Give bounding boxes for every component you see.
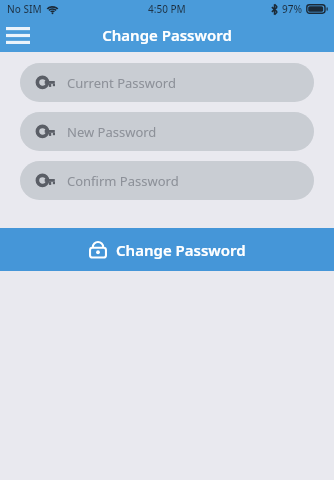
staticText: New Password [67,123,157,141]
button[interactable]: Current Password [20,63,314,102]
staticText: 4:50 PM [148,2,186,16]
staticText: No SIM [7,2,42,16]
button[interactable]: New Password [20,112,314,151]
staticText: 97% [282,2,302,16]
button[interactable]: Open navigation menu [0,18,36,52]
staticText: Confirm Password [67,172,179,190]
button[interactable]: Change Password [0,228,334,271]
staticText: Change Password [116,240,246,260]
button[interactable]: Confirm Password [20,161,314,200]
staticText: Current Password [67,74,176,92]
staticText: Change Password [0,25,334,45]
